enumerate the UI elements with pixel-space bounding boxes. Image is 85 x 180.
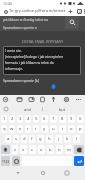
staticText: k [66,136,69,142]
button[interactable]: m [65,145,72,154]
button[interactable]: t [33,125,39,133]
button[interactable]: 3 [17,115,23,123]
button[interactable]: w [9,125,15,133]
button[interactable]: g [37,135,44,143]
button[interactable]: l [73,135,80,143]
button[interactable]: d [21,135,27,143]
staticText: g [39,136,42,142]
button[interactable]: More options [84,7,85,15]
staticText: but [59,107,66,112]
staticText: 9 [70,116,73,122]
staticText: r [27,126,29,132]
staticText: Sprawdzam ręcznie a [3,25,37,30]
staticText: u [52,126,55,132]
staticText: 0 [79,116,82,122]
staticText: c [31,147,34,153]
staticText: z [14,147,16,153]
button[interactable]: y [41,125,48,133]
button[interactable]: Page info [2,8,9,15]
button[interactable]: o [68,125,75,133]
button[interactable]: shift [1,145,10,154]
staticText: q [3,126,6,132]
button[interactable]: 7 [50,115,57,123]
button[interactable]: r [25,125,31,133]
staticText: Sprawdzam ręcznie [b] [3,78,40,83]
button[interactable]: b [47,145,54,154]
button[interactable]: Expand suggestions [0,104,12,114]
button[interactable]: Back [11,167,25,179]
button[interactable]: n [56,145,63,154]
button[interactable]: and [12,104,42,114]
button[interactable]: s [13,135,19,143]
button[interactable]: j [55,135,62,143]
staticText: To gry-online.pl/forum/temat [9,8,66,14]
staticText: m [67,147,71,153]
button[interactable]: Enter [74,156,84,166]
button[interactable]: f [29,135,35,143]
button[interactable]: x [20,145,27,154]
staticText: h [48,136,51,142]
staticText: 3 [19,116,22,122]
staticText: ZOSTAŁ EMAIL WYPISANY [0,39,85,44]
staticText: l [76,136,78,142]
button[interactable]: 1 [1,115,7,123]
button[interactable]: emoji [12,156,20,166]
staticText: 1 [3,116,6,122]
button[interactable]: h [46,135,53,143]
button[interactable]: but [43,104,81,114]
staticText: t [35,126,37,132]
button[interactable]: Open tabs [75,7,84,16]
button[interactable]: 5 [33,115,39,123]
staticText: v [40,147,43,153]
button[interactable]: 2 [9,115,15,123]
button[interactable]: p [77,125,84,133]
staticText: f [31,136,33,142]
button[interactable]: c [29,145,36,154]
button[interactable]: v [38,145,45,154]
button[interactable]: k [64,135,71,143]
staticText: 8 [61,116,64,122]
button[interactable]: z [12,145,18,154]
button[interactable]: 8 [59,115,66,123]
staticText: n [58,147,61,153]
staticText: b [49,147,52,153]
button[interactable]: More keyboard options [74,95,83,104]
staticText: o [70,126,73,132]
staticText: j [58,136,60,142]
button[interactable]: Gboard [1,95,10,104]
staticText: I mnie nie. [5,48,22,53]
staticText: y [43,126,46,132]
button[interactable]: q [1,125,7,133]
button[interactable]: e [17,125,23,133]
staticText: i [62,126,64,132]
button[interactable]: 6 [41,115,48,123]
button[interactable]: a [5,135,11,143]
staticText: p [79,126,82,132]
button[interactable]: Find in page [65,16,79,29]
staticText: 4 [27,116,30,122]
button[interactable]: New tab [66,7,75,16]
button[interactable]: Settings [62,95,71,104]
button[interactable]: GIF [27,95,36,104]
staticText: [nieczytelne]/kolego i jak nieczytelne [5,54,64,59]
button[interactable]: 4 [25,115,31,123]
staticText: a [7,136,10,142]
button[interactable]: i [59,125,66,133]
button[interactable]: 0 [77,115,84,123]
staticText: 6 [43,116,46,122]
button[interactable]: 9 [68,115,75,123]
staticText: informacje. [5,66,23,71]
button[interactable]: u [50,125,57,133]
button[interactable]: Recent apps [60,167,74,179]
staticText: d [23,136,26,142]
button[interactable]: Voice typing [49,95,58,104]
button[interactable]: Home [36,167,50,179]
button[interactable]: ?123 [1,156,10,166]
staticText: 4 [79,10,81,14]
staticText: ?123 [2,159,10,164]
button[interactable]: backspace [74,145,84,154]
staticText: s [15,136,18,142]
button[interactable]: Stickers [15,95,24,104]
button[interactable]: Clipboard [38,95,47,104]
